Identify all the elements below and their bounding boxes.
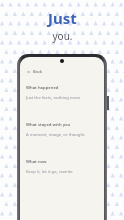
staticText: you.	[52, 29, 73, 43]
staticText: Keep it, let it go, rewrite	[26, 169, 73, 175]
staticText: A moment, image, or thought	[26, 132, 85, 138]
staticText: What stayed with you	[26, 122, 71, 128]
button[interactable]: What now	[26, 159, 98, 175]
button[interactable]: What happened	[26, 85, 98, 101]
staticText: Back	[33, 69, 43, 74]
staticText: What happened	[26, 85, 59, 91]
staticText: Just the facts, nothing more	[26, 95, 81, 101]
button[interactable]: What stayed with you	[26, 122, 98, 138]
button[interactable]: Back	[26, 68, 44, 75]
staticText: Just	[48, 8, 77, 28]
staticText: What now	[26, 159, 47, 165]
